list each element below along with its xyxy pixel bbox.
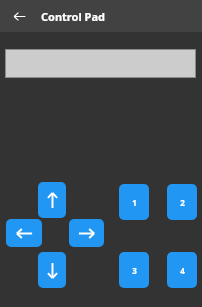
button[interactable]: Back bbox=[9, 6, 29, 26]
staticText: Control Pad bbox=[41, 9, 105, 24]
button[interactable]: Down bbox=[38, 252, 66, 288]
staticText: 4 bbox=[180, 265, 185, 276]
button[interactable]: Up bbox=[38, 182, 66, 218]
staticText: 3 bbox=[132, 265, 137, 276]
button[interactable]: 1 bbox=[119, 184, 149, 220]
button[interactable]: 3 bbox=[119, 252, 149, 288]
button[interactable]: Right bbox=[69, 219, 104, 247]
button[interactable]: Left bbox=[6, 219, 42, 247]
button[interactable]: 4 bbox=[167, 252, 197, 288]
button[interactable]: 2 bbox=[167, 184, 197, 220]
staticText: 1 bbox=[132, 197, 137, 208]
staticText: 2 bbox=[180, 197, 185, 208]
